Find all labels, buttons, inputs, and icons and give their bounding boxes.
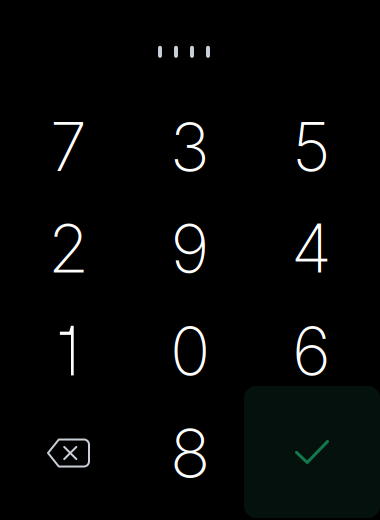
- staticText: 0: [170, 310, 210, 391]
- button[interactable]: 8: [129, 402, 250, 504]
- staticText: 8: [170, 413, 210, 493]
- button[interactable]: 4: [251, 197, 372, 299]
- button[interactable]: 0: [129, 300, 250, 402]
- staticText: 9: [170, 208, 209, 289]
- button[interactable]: Delete: [8, 402, 129, 504]
- button[interactable]: 9: [129, 197, 250, 299]
- staticText: 5: [292, 106, 331, 187]
- button[interactable]: 3: [129, 96, 250, 198]
- button[interactable]: 7: [8, 96, 129, 198]
- staticText: 7: [50, 106, 87, 187]
- button[interactable]: Confirm: [244, 386, 380, 518]
- staticText: 2: [48, 208, 89, 289]
- staticText: 4: [291, 208, 332, 289]
- button[interactable]: 6: [251, 300, 372, 402]
- button[interactable]: 5: [251, 96, 372, 198]
- button[interactable]: 1: [6, 300, 127, 402]
- staticText: 3: [170, 106, 210, 187]
- staticText: 6: [292, 310, 331, 391]
- button[interactable]: 2: [8, 197, 129, 299]
